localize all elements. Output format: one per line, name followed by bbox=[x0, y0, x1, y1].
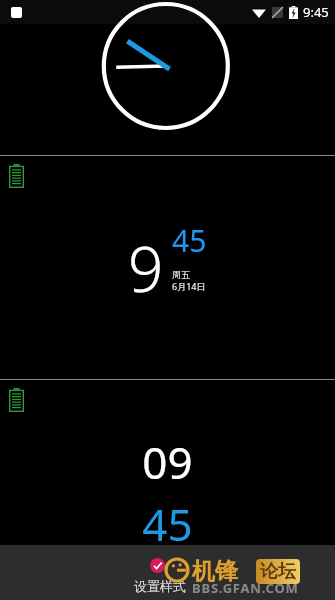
staticText: 45 bbox=[172, 220, 207, 261]
staticText: 09 bbox=[142, 432, 193, 492]
staticText: 论坛 bbox=[260, 560, 296, 583]
staticText: 45 bbox=[142, 494, 193, 545]
staticText: 6月14日 bbox=[172, 280, 206, 292]
button[interactable]: 设置样式 bbox=[130, 576, 190, 596]
staticText: BBS.GFAN.COM bbox=[192, 579, 299, 597]
staticText: 周五 bbox=[172, 269, 190, 280]
staticText: 9 bbox=[128, 226, 164, 310]
button[interactable] bbox=[0, 24, 335, 155]
staticText: 设置样式 bbox=[134, 578, 186, 594]
staticText: 9:45 bbox=[303, 3, 329, 21]
button[interactable]: 9 bbox=[0, 156, 335, 379]
button[interactable]: 09 bbox=[0, 380, 335, 545]
staticText: 机锋 bbox=[192, 557, 238, 586]
